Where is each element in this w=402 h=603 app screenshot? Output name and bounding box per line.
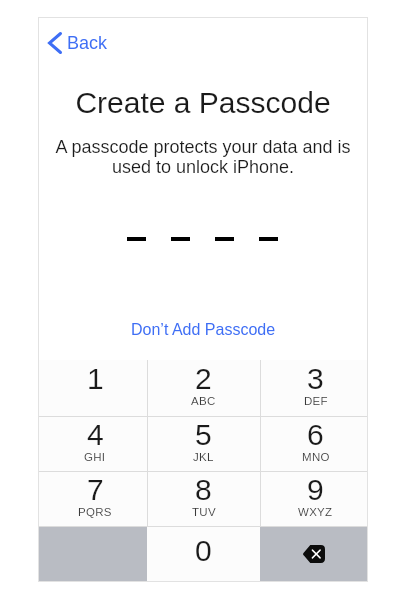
staticText: A passcode protects your data and is use… bbox=[39, 137, 367, 177]
staticText: Create a Passcode bbox=[39, 86, 367, 120]
staticText: JKL bbox=[193, 451, 214, 464]
staticText: PQRS bbox=[78, 506, 112, 519]
button[interactable]: Don’t Add Passcode bbox=[123, 316, 284, 344]
button[interactable]: 2 bbox=[147, 360, 260, 416]
button[interactable]: Back bbox=[44, 29, 112, 57]
staticText: 7 bbox=[87, 473, 104, 507]
staticText: 2 bbox=[195, 362, 212, 396]
button[interactable]: 1 bbox=[39, 360, 147, 416]
staticText: TUV bbox=[192, 506, 216, 519]
staticText: GHI bbox=[84, 451, 106, 464]
staticText: Back bbox=[67, 33, 108, 53]
staticText: 9 bbox=[307, 473, 324, 507]
staticText: MNO bbox=[302, 451, 330, 464]
button[interactable]: 4 bbox=[39, 416, 147, 471]
button[interactable] bbox=[39, 526, 147, 581]
staticText: Don’t Add Passcode bbox=[131, 321, 276, 339]
button[interactable]: 0 bbox=[147, 526, 260, 581]
button[interactable]: 8 bbox=[147, 471, 260, 526]
button[interactable]: Delete bbox=[260, 526, 367, 581]
staticText: 4 bbox=[87, 418, 104, 452]
button[interactable]: 6 bbox=[260, 416, 367, 471]
staticText: 1 bbox=[87, 362, 104, 396]
staticText: 0 bbox=[195, 534, 212, 568]
staticText: DEF bbox=[304, 395, 328, 408]
button[interactable]: 9 bbox=[260, 471, 367, 526]
staticText: 3 bbox=[307, 362, 324, 396]
staticText: WXYZ bbox=[298, 506, 333, 519]
staticText: ABC bbox=[191, 395, 216, 408]
staticText: 5 bbox=[195, 418, 212, 452]
button[interactable]: 5 bbox=[147, 416, 260, 471]
staticText: 6 bbox=[307, 418, 324, 452]
button[interactable]: 3 bbox=[260, 360, 367, 416]
button[interactable]: 7 bbox=[39, 471, 147, 526]
staticText: 8 bbox=[195, 473, 212, 507]
